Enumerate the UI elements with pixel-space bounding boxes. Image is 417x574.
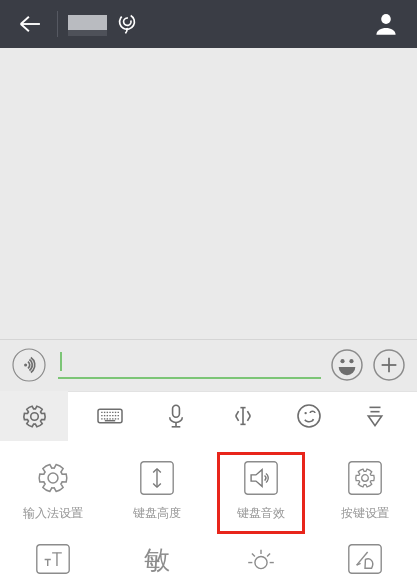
button[interactable]: 键盘音效 bbox=[209, 443, 313, 536]
button[interactable]: Profile bbox=[363, 1, 409, 47]
staticText: 键盘高度 bbox=[133, 505, 181, 520]
button[interactable]: Listen bbox=[108, 5, 146, 43]
button[interactable]: Emoji bbox=[327, 345, 367, 385]
button[interactable]: Text size bbox=[0, 536, 105, 574]
button[interactable]: Keyboard bbox=[86, 392, 134, 440]
button[interactable]: More bbox=[369, 345, 409, 385]
button[interactable]: Move cursor bbox=[219, 392, 267, 440]
button[interactable]: 按键设置 bbox=[313, 443, 417, 536]
button[interactable]: Voice input bbox=[10, 346, 48, 384]
button[interactable]: Stickers bbox=[285, 392, 333, 440]
staticText: 按键设置 bbox=[341, 505, 389, 520]
button[interactable]: Brightness bbox=[209, 536, 313, 574]
button[interactable]: Microphone bbox=[152, 392, 200, 440]
button[interactable]: Hide keyboard bbox=[351, 392, 399, 440]
button[interactable] bbox=[58, 345, 321, 385]
button[interactable]: Sensitivity bbox=[105, 536, 209, 574]
button[interactable]: Gesture bbox=[313, 536, 417, 574]
button[interactable]: 输入法设置 bbox=[0, 443, 105, 536]
button[interactable]: Back bbox=[6, 0, 54, 48]
button[interactable]: 键盘高度 bbox=[105, 443, 209, 536]
staticText: 键盘音效 bbox=[237, 505, 285, 520]
button[interactable]: Settings bbox=[0, 391, 68, 441]
staticText: 敏 bbox=[144, 544, 170, 574]
staticText: 输入法设置 bbox=[23, 505, 83, 520]
